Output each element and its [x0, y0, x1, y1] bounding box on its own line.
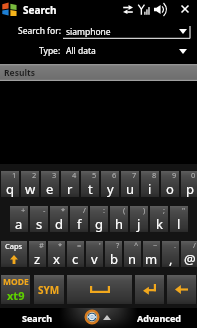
button[interactable]: (: [110, 206, 128, 232]
staticText: Search for:: [18, 25, 61, 37]
staticText: u: [126, 180, 135, 198]
staticText: ': [99, 240, 101, 250]
button[interactable]: ": [170, 206, 188, 232]
staticText: v: [91, 250, 98, 268]
staticText: s: [36, 215, 43, 233]
staticText: w: [25, 180, 36, 198]
button[interactable]: *: [50, 206, 68, 232]
staticText: /: [83, 205, 86, 215]
staticText: p: [186, 180, 194, 198]
staticText: f: [77, 215, 82, 233]
button[interactable]: MODE: [1, 275, 30, 304]
staticText: Type:: [39, 45, 61, 57]
staticText: Caps: [5, 241, 23, 251]
button[interactable]: 5: [81, 171, 99, 197]
button[interactable]: *: [48, 241, 65, 267]
staticText: i: [148, 180, 152, 198]
button[interactable]: Caps: [1, 241, 27, 267]
staticText: 1: [12, 170, 17, 180]
button[interactable]: 4: [61, 171, 79, 197]
staticText: 3: [52, 170, 57, 180]
button[interactable]: Space: [67, 275, 132, 304]
button[interactable]: Start menu: [74, 308, 122, 328]
staticText: *: [61, 205, 66, 215]
staticText: ;: [163, 205, 166, 215]
staticText: e: [46, 180, 54, 198]
button[interactable]: ): [130, 206, 148, 232]
staticText: 8: [152, 170, 157, 180]
button[interactable]: All data: [63, 44, 191, 58]
button[interactable]: ^: [124, 241, 141, 267]
staticText: .: [174, 240, 177, 250]
button[interactable]: Search: [0, 308, 74, 328]
staticText: j: [137, 215, 141, 233]
button[interactable]: ?: [105, 241, 122, 267]
button[interactable]: #: [29, 241, 46, 267]
other: Sync: [123, 5, 133, 14]
button[interactable]: /: [181, 241, 197, 267]
button[interactable]: 0: [181, 171, 197, 197]
staticText: g: [95, 215, 103, 233]
staticText: -: [43, 205, 46, 215]
staticText: 0: [191, 170, 196, 180]
button[interactable]: 9: [161, 171, 179, 197]
staticText: ": [182, 205, 186, 215]
button[interactable]: Enter: [135, 275, 164, 304]
staticText: Search: [22, 312, 53, 324]
staticText: #: [39, 240, 44, 250]
other: Close: [181, 5, 189, 13]
staticText: 9: [172, 170, 177, 180]
staticText: k: [156, 215, 163, 233]
other: Signal: [138, 4, 150, 15]
staticText: MODE: [3, 276, 29, 288]
staticText: 5: [92, 170, 97, 180]
button[interactable]: /: [70, 206, 88, 232]
button[interactable]: :: [90, 206, 108, 232]
staticText: q: [6, 180, 14, 198]
button[interactable]: .: [162, 241, 179, 267]
button[interactable]: ;: [150, 206, 168, 232]
staticText: m: [145, 250, 158, 268]
button[interactable]: ~: [143, 241, 160, 267]
staticText: h: [115, 215, 124, 233]
staticText: 6: [112, 170, 117, 180]
staticText: =: [77, 240, 82, 250]
button[interactable]: 8: [141, 171, 159, 197]
staticText: c: [72, 250, 79, 268]
staticText: Search: [23, 3, 57, 17]
button[interactable]: +: [10, 206, 28, 232]
staticText: r: [67, 180, 73, 198]
other: Volume: [154, 5, 168, 14]
staticText: 2: [32, 170, 37, 180]
staticText: n: [128, 250, 137, 268]
staticText: ,: [169, 250, 173, 268]
staticText: o: [166, 180, 174, 198]
staticText: All data: [66, 45, 96, 57]
staticText: ~: [153, 240, 158, 250]
staticText: @: [184, 250, 196, 268]
button[interactable]: siamphone: [63, 24, 191, 39]
staticText: 7: [132, 170, 137, 180]
button[interactable]: 6: [101, 171, 119, 197]
staticText: a: [15, 215, 23, 233]
staticText: /: [193, 240, 196, 250]
button[interactable]: SYM: [34, 275, 64, 304]
button[interactable]: ': [86, 241, 103, 267]
button[interactable]: 3: [41, 171, 59, 197]
button[interactable]: Backspace: [167, 275, 196, 304]
button[interactable]: -: [30, 206, 48, 232]
staticText: x: [53, 250, 60, 268]
button[interactable]: Advanced: [122, 308, 197, 328]
button[interactable]: 1: [1, 171, 19, 197]
staticText: ?: [116, 240, 120, 250]
staticText: 4: [72, 170, 77, 180]
staticText: ): [143, 205, 146, 215]
button[interactable]: =: [67, 241, 84, 267]
button[interactable]: 7: [121, 171, 139, 197]
staticText: b: [110, 250, 118, 268]
staticText: :: [103, 205, 106, 215]
button[interactable]: 2: [21, 171, 39, 197]
staticText: *: [58, 240, 63, 250]
staticText: xt9: [7, 288, 25, 303]
staticText: l: [177, 215, 181, 233]
